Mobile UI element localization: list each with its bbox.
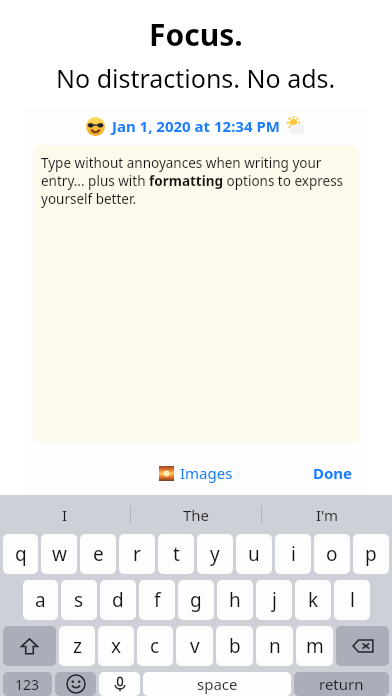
staticText: Done — [313, 463, 353, 483]
button[interactable]: p — [353, 534, 389, 574]
button[interactable]: return — [294, 672, 389, 696]
button[interactable]: s — [61, 580, 97, 620]
button[interactable]: c — [137, 626, 173, 666]
staticText: h — [229, 587, 241, 613]
button[interactable]: i — [275, 534, 311, 574]
staticText: z — [73, 633, 82, 659]
staticText: space — [197, 674, 238, 694]
staticText: w — [52, 541, 67, 567]
button[interactable]: q — [3, 534, 38, 574]
button[interactable]: Delete — [336, 626, 389, 666]
button[interactable]: e — [80, 534, 116, 574]
staticText: No distractions. No ads. — [56, 61, 336, 95]
staticText: The — [183, 505, 210, 525]
button[interactable]: h — [217, 580, 253, 620]
button[interactable]: j — [256, 580, 292, 620]
button[interactable]: w — [41, 534, 77, 574]
staticText: q — [15, 541, 27, 567]
staticText: t — [173, 541, 180, 567]
staticText: d — [112, 587, 124, 613]
button[interactable]: u — [236, 534, 272, 574]
staticText: return — [319, 674, 364, 694]
button[interactable]: o — [314, 534, 350, 574]
staticText: b — [229, 633, 241, 659]
staticText: f — [154, 587, 161, 613]
button[interactable]: The — [131, 495, 261, 534]
button[interactable]: x — [98, 626, 134, 666]
button[interactable]: Jan 1, 2020 at 12:34 PM — [25, 107, 367, 145]
button[interactable]: space — [143, 672, 291, 696]
staticText: j — [272, 587, 277, 613]
button[interactable]: Done — [309, 459, 357, 487]
button[interactable]: y — [197, 534, 233, 574]
staticText: Focus. — [149, 14, 243, 55]
button[interactable]: g — [178, 580, 214, 620]
staticText: I — [62, 505, 68, 525]
staticText: s — [74, 587, 84, 613]
button[interactable]: k — [295, 580, 331, 620]
button[interactable]: b — [216, 626, 253, 666]
staticText: v — [190, 633, 200, 659]
button[interactable]: f — [139, 580, 175, 620]
staticText: u — [248, 541, 260, 567]
staticText: i — [291, 541, 296, 567]
staticText: a — [35, 587, 46, 613]
staticText: o — [326, 541, 338, 567]
button[interactable]: Dictation — [99, 672, 140, 696]
button[interactable]: t — [158, 534, 194, 574]
button[interactable]: I'm — [262, 495, 392, 534]
staticText: x — [111, 633, 122, 659]
button[interactable]: z — [59, 626, 95, 666]
button[interactable]: Type without annoyances when writing you… — [33, 145, 359, 443]
button[interactable]: d — [100, 580, 136, 620]
button[interactable]: Shift — [3, 626, 56, 666]
staticText: m — [306, 633, 324, 659]
staticText: Jan 1, 2020 at 12:34 PM — [112, 116, 280, 136]
staticText: Type without annoyances when writing you… — [41, 154, 351, 208]
staticText: Images — [180, 463, 233, 483]
staticText: n — [269, 633, 281, 659]
staticText: e — [93, 541, 104, 567]
button[interactable]: r — [119, 534, 155, 574]
button[interactable]: l — [334, 580, 370, 620]
staticText: r — [133, 541, 141, 567]
button[interactable]: Images — [159, 463, 233, 483]
staticText: 123 — [15, 675, 40, 694]
button[interactable]: a — [23, 580, 58, 620]
button[interactable]: m — [296, 626, 333, 666]
staticText: c — [150, 633, 160, 659]
staticText: k — [308, 587, 319, 613]
button[interactable]: v — [176, 626, 213, 666]
staticText: y — [210, 541, 220, 567]
button[interactable]: n — [256, 626, 293, 666]
button[interactable]: 123 — [3, 672, 52, 696]
staticText: g — [190, 587, 202, 613]
button[interactable]: I — [0, 495, 130, 534]
button[interactable]: Emoji — [55, 672, 96, 696]
staticText: l — [350, 587, 355, 613]
staticText: p — [365, 541, 377, 567]
staticText: I'm — [316, 505, 339, 525]
